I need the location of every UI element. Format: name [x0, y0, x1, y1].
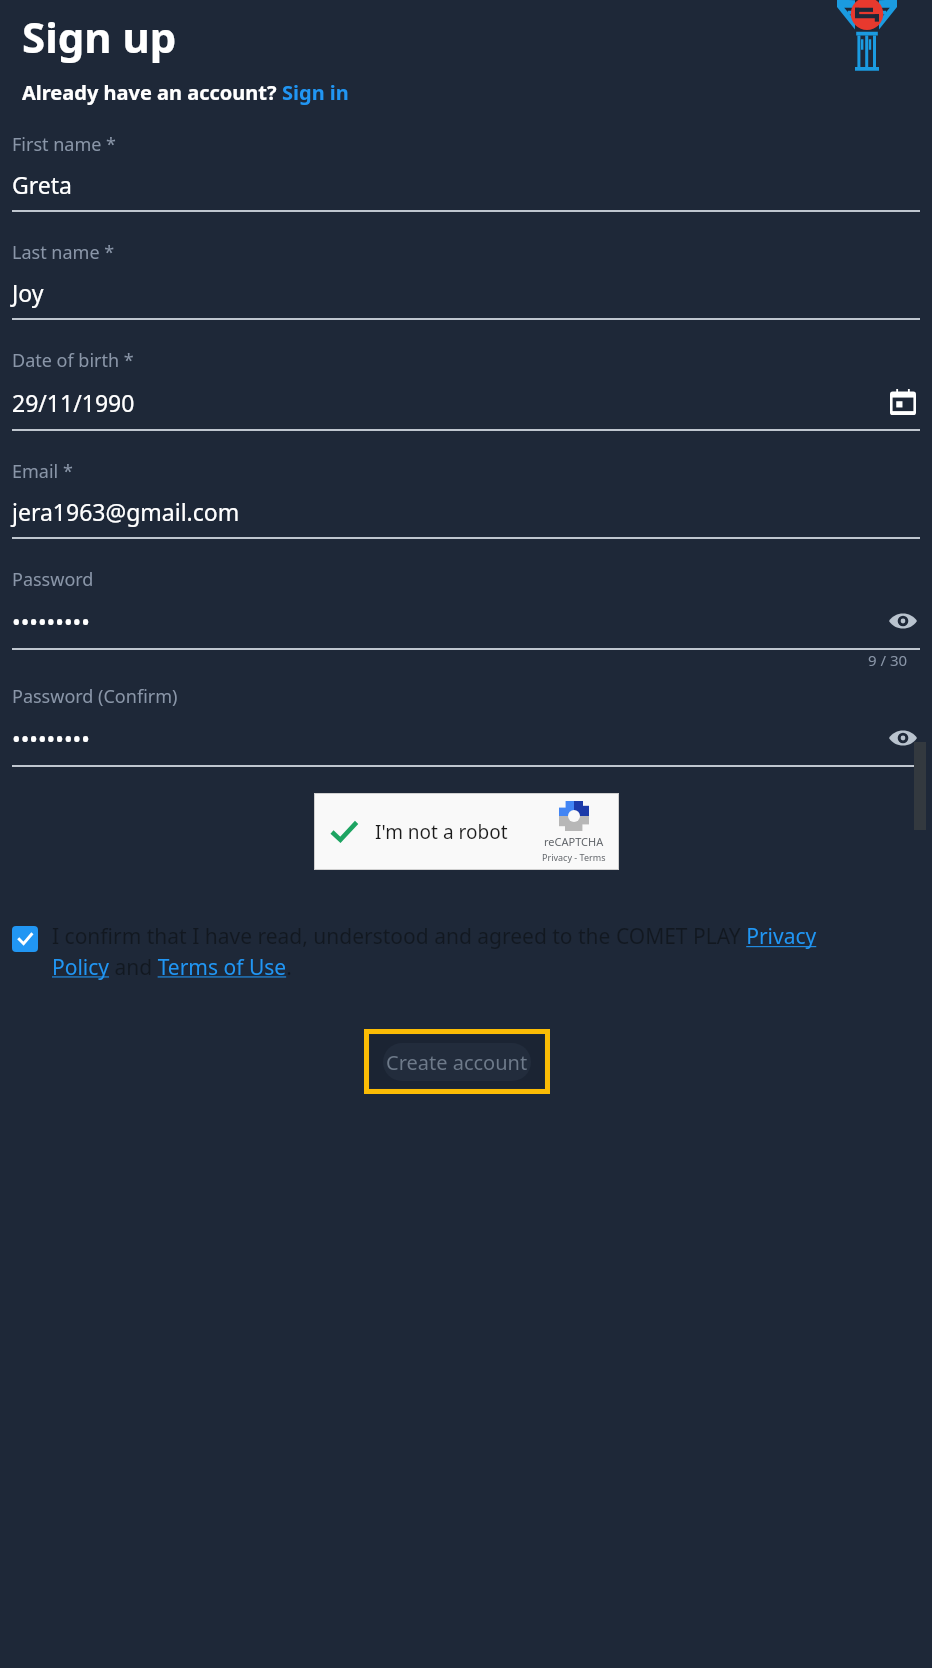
staticText: ••••••••• [12, 606, 90, 637]
button[interactable]: Sign in [282, 79, 349, 106]
staticText: Sign up [22, 8, 177, 65]
button[interactable]: I'm not a robot [315, 794, 618, 869]
staticText: 9 / 30 [868, 650, 908, 670]
staticText: 29/11/1990 [12, 387, 135, 418]
button[interactable]: Email * [0, 459, 932, 539]
button[interactable]: Create account [383, 1043, 531, 1081]
button[interactable]: Last name * [0, 240, 932, 320]
staticText: Date of birth * [12, 348, 134, 373]
button[interactable]: Password [0, 567, 932, 650]
staticText: ••••••••• [12, 723, 90, 754]
staticText: Last name * [12, 240, 115, 265]
button[interactable]: Toggle password visibility [886, 604, 920, 638]
staticText: Already have an account? [22, 79, 282, 106]
staticText: Email * [12, 459, 73, 484]
button[interactable]: Toggle password visibility [886, 721, 920, 755]
staticText: Joy [12, 277, 44, 308]
staticText: Privacy - Terms [542, 851, 606, 863]
staticText: First name * [12, 132, 117, 157]
staticText: I confirm that I have read, understood a… [52, 922, 872, 981]
button[interactable]: Pick date [886, 385, 920, 419]
staticText: Password [12, 567, 94, 592]
staticText: Create account [386, 1049, 528, 1076]
staticText: Password (Confirm) [12, 684, 178, 709]
staticText: Sign in [282, 79, 349, 106]
button[interactable]: Date of birth * [0, 348, 932, 431]
staticText: reCAPTCHA [544, 834, 604, 849]
staticText: Greta [12, 169, 72, 200]
button[interactable]: I confirm that I have read, understood a… [52, 922, 872, 981]
button[interactable]: First name * [0, 132, 932, 212]
button[interactable]: Confirm terms checkbox [12, 926, 38, 952]
button[interactable]: Password (Confirm) [0, 684, 932, 767]
staticText: I'm not a robot [375, 819, 508, 845]
staticText: jera1963@gmail.com [12, 496, 240, 527]
